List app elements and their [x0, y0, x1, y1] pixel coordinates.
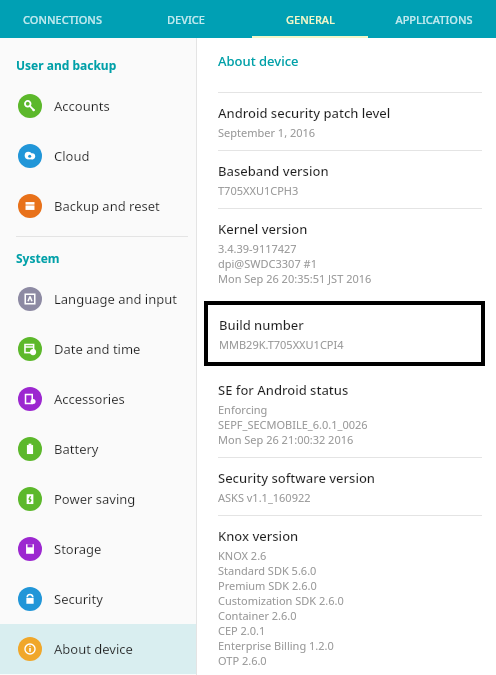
staticText: ASKS v1.1_160922: [218, 490, 311, 505]
staticText: Baseband version: [218, 162, 329, 180]
button[interactable]: Android security patch level: [197, 93, 496, 150]
staticText: User and backup: [16, 57, 117, 73]
button[interactable]: DEVICE: [124, 0, 248, 38]
button[interactable]: CONNECTIONS: [0, 0, 124, 38]
staticText: Build number: [219, 316, 304, 334]
button[interactable]: Battery: [0, 424, 196, 474]
staticText: Knox version: [218, 527, 299, 545]
staticText: Mon Sep 26 20:35:51 JST 2016: [218, 271, 372, 286]
staticText: Container 2.6.0: [218, 608, 297, 623]
button[interactable]: Security software version: [197, 458, 496, 515]
staticText: Date and time: [54, 340, 141, 358]
button[interactable]: Cloud: [0, 131, 196, 181]
button[interactable]: Build number: [208, 305, 481, 362]
staticText: Storage: [54, 540, 102, 558]
staticText: Cloud: [54, 147, 90, 165]
button[interactable]: Backup and reset: [0, 181, 196, 231]
staticText: Mon Sep 26 21:00:32 2016: [218, 432, 354, 447]
staticText: MMB29K.T705XXU1CPI4: [219, 337, 344, 352]
staticText: Security software version: [218, 469, 376, 487]
staticText: DEVICE: [167, 12, 205, 27]
staticText: Accounts: [54, 97, 110, 115]
staticText: Android security patch level: [218, 104, 391, 122]
button[interactable]: Kernel version: [197, 209, 496, 296]
staticText: About device: [218, 52, 299, 70]
staticText: KNOX 2.6: [218, 548, 267, 563]
staticText: CEP 2.0.1: [218, 623, 266, 638]
staticText: 3.4.39-9117427: [218, 241, 297, 256]
staticText: Backup and reset: [54, 197, 160, 215]
staticText: Power saving: [54, 490, 136, 508]
button[interactable]: Date and time: [0, 324, 196, 374]
button[interactable]: Security: [0, 574, 196, 624]
staticText: APPLICATIONS: [395, 12, 473, 27]
staticText: Battery: [54, 440, 99, 458]
staticText: Security: [54, 590, 103, 608]
button[interactable]: Knox version: [197, 516, 496, 675]
button[interactable]: Accounts: [0, 81, 196, 131]
staticText: CONNECTIONS: [23, 12, 102, 27]
staticText: Language and input: [54, 290, 177, 308]
staticText: Standard SDK 5.6.0: [218, 563, 317, 578]
staticText: GENERAL: [286, 12, 335, 27]
button[interactable]: GENERAL: [248, 0, 372, 38]
staticText: SE for Android status: [218, 381, 349, 399]
staticText: dpi@SWDC3307 #1: [218, 256, 317, 271]
staticText: September 1, 2016: [218, 125, 316, 140]
button[interactable]: Storage: [0, 524, 196, 574]
staticText: Enforcing: [218, 402, 268, 417]
staticText: Kernel version: [218, 220, 308, 238]
staticText: About device: [54, 640, 133, 658]
staticText: Premium SDK 2.6.0: [218, 578, 317, 593]
staticText: Accessories: [54, 390, 125, 408]
button[interactable]: Accessories: [0, 374, 196, 424]
staticText: OTP 2.6.0: [218, 653, 267, 665]
staticText: Enterprise Billing 1.2.0: [218, 638, 334, 653]
staticText: SEPF_SECMOBILE_6.0.1_0026: [218, 417, 368, 432]
staticText: Customization SDK 2.6.0: [218, 593, 344, 608]
button[interactable]: APPLICATIONS: [372, 0, 496, 38]
button[interactable]: About device: [0, 624, 196, 674]
button[interactable]: Language and input: [0, 274, 196, 324]
button[interactable]: SE for Android status: [197, 370, 496, 457]
button[interactable]: Baseband version: [197, 151, 496, 208]
staticText: T705XXU1CPH3: [218, 183, 299, 198]
staticText: System: [16, 250, 60, 266]
button[interactable]: Power saving: [0, 474, 196, 524]
